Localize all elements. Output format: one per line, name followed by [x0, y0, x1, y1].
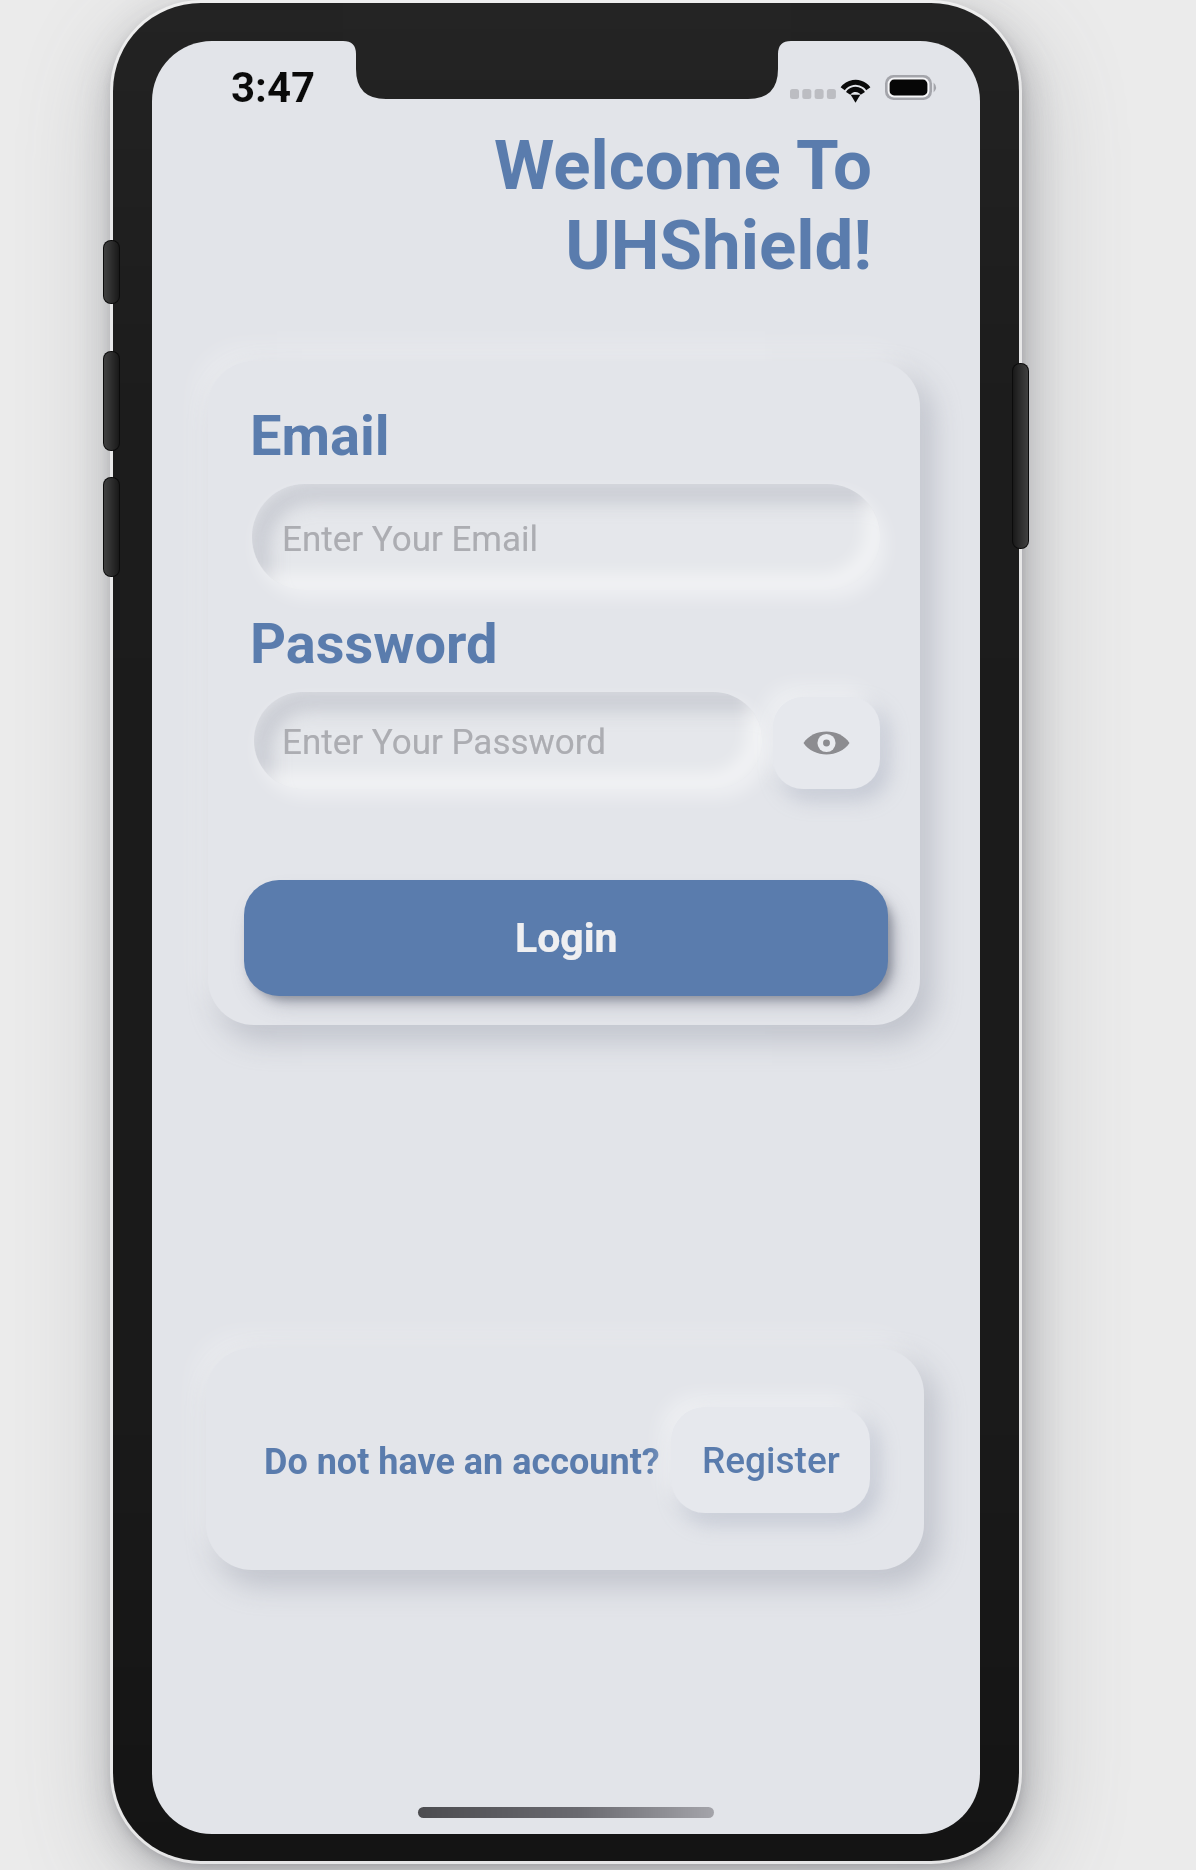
- staticText: Email: [250, 403, 390, 469]
- staticText: 3:47: [231, 63, 316, 112]
- staticText: Password: [250, 611, 498, 677]
- staticText: Login: [515, 914, 618, 962]
- staticText: Enter Your Password: [282, 722, 607, 763]
- staticText: Welcome To UHShield!: [272, 125, 872, 286]
- staticText: Register: [702, 1439, 840, 1482]
- button[interactable]: Login: [244, 880, 888, 996]
- button[interactable]: Show password: [773, 697, 880, 789]
- button[interactable]: Enter Your Email: [252, 484, 880, 590]
- staticText: Enter Your Email: [282, 519, 539, 560]
- staticText: Do not have an account?: [264, 1441, 660, 1483]
- button[interactable]: Register: [671, 1407, 870, 1513]
- button[interactable]: Enter Your Password: [254, 692, 762, 789]
